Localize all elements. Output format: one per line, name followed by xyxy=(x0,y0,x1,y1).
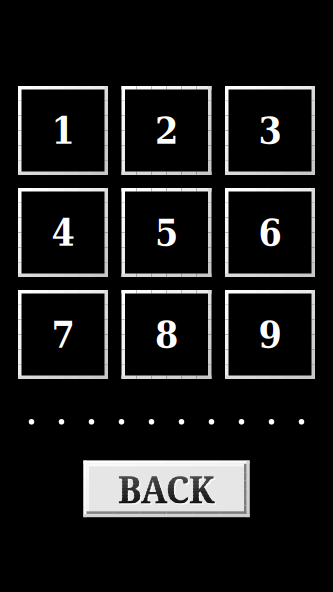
staticText: BACK xyxy=(119,465,216,516)
staticText: BACK xyxy=(118,463,215,514)
button[interactable]: 3 xyxy=(225,86,315,175)
button[interactable]: 1 xyxy=(18,86,108,175)
staticText: BACK xyxy=(118,463,215,514)
staticText: 7 xyxy=(51,313,74,356)
button[interactable]: 2 xyxy=(121,86,211,175)
button[interactable]: 8 xyxy=(121,290,211,379)
button[interactable]: BACK xyxy=(83,461,249,517)
button[interactable]: 5 xyxy=(121,188,211,277)
button[interactable]: 6 xyxy=(225,188,315,277)
staticText: BACK xyxy=(118,463,215,514)
staticText: 6 xyxy=(258,211,281,254)
staticText: BACK xyxy=(118,463,215,514)
staticText: 2 xyxy=(155,109,178,152)
staticText: BACK xyxy=(118,463,215,514)
staticText: BACK xyxy=(118,463,215,514)
button[interactable]: 9 xyxy=(225,290,315,379)
staticText: 5 xyxy=(155,211,178,254)
staticText: BACK xyxy=(118,463,215,514)
staticText: BACK xyxy=(118,463,215,514)
button[interactable]: 4 xyxy=(18,188,108,277)
staticText: BACK xyxy=(118,463,215,514)
staticText: 3 xyxy=(258,109,281,152)
staticText: 8 xyxy=(155,313,178,356)
staticText: 4 xyxy=(51,211,74,254)
staticText: BACK xyxy=(118,463,215,514)
button[interactable]: 7 xyxy=(18,290,108,379)
staticText: 1 xyxy=(51,109,74,152)
staticText: 9 xyxy=(258,313,281,356)
